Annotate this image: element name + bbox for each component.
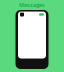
staticText: Messages — [19, 1, 45, 9]
